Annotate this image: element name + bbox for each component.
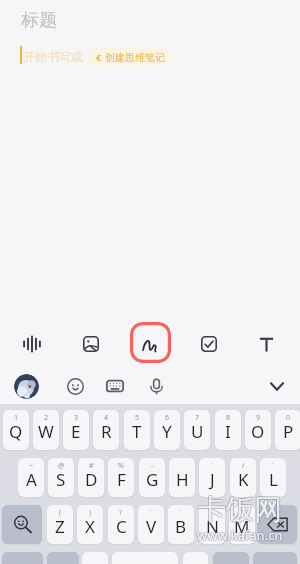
staticText: 创建思维笔记 <box>105 51 165 64</box>
button[interactable]: 8 <box>215 410 241 450</box>
staticText: # <box>89 461 94 471</box>
staticText: H <box>176 468 189 491</box>
button[interactable]: Collapse keyboard <box>265 374 289 398</box>
staticText: 8 <box>226 413 231 423</box>
staticText: www.kafan.cn <box>196 526 282 544</box>
button[interactable]: - <box>139 458 165 497</box>
staticText: K <box>238 468 249 491</box>
button[interactable]: Numbers and symbols <box>2 552 43 564</box>
button[interactable]: ˙ <box>169 458 195 497</box>
button[interactable]: ~ <box>18 458 44 497</box>
button[interactable]: ˙ <box>168 505 194 544</box>
staticText: www.kafan.cn <box>198 525 284 543</box>
button[interactable]: Enter <box>253 552 297 564</box>
button[interactable]: 0 <box>275 410 300 450</box>
button[interactable]: 3 <box>63 410 89 450</box>
staticText: www.kafan.cn <box>196 527 282 545</box>
staticText: 卡饭网 <box>197 493 281 528</box>
staticText: 1 <box>14 413 19 423</box>
button[interactable]: Space <box>112 552 178 564</box>
staticText: www.kafan.cn <box>197 527 283 545</box>
staticText: B <box>175 515 187 538</box>
staticText: 卡饭网 <box>199 493 283 528</box>
button[interactable]: # <box>78 458 104 497</box>
button[interactable]: Profile <box>14 374 39 399</box>
button[interactable]: Checklist <box>193 328 225 360</box>
staticText: www.kafan.cn <box>198 527 284 545</box>
staticText: U <box>191 420 204 443</box>
button[interactable]: € <box>88 48 171 66</box>
button[interactable]: ˙ <box>229 505 255 544</box>
button[interactable]: ? <box>108 505 134 544</box>
staticText: L <box>269 468 278 491</box>
button[interactable]: 9 <box>245 410 271 450</box>
button[interactable]: ˙ <box>199 458 225 497</box>
staticText: ˙ <box>211 508 213 518</box>
button[interactable]: / <box>230 458 256 497</box>
button[interactable]: Voice input <box>144 374 168 398</box>
staticText: www.kafan.cn <box>196 525 282 543</box>
staticText: F <box>117 468 126 491</box>
staticText: C <box>116 515 127 538</box>
staticText: O <box>251 420 265 443</box>
staticText: 7 <box>195 413 200 423</box>
button[interactable]: Audio recording <box>16 328 48 360</box>
button[interactable]: Handwriting <box>130 322 171 363</box>
staticText: @ <box>58 461 65 471</box>
staticText: 卡饭网 <box>199 492 283 527</box>
button[interactable]: @ <box>48 458 74 497</box>
staticText: I <box>225 420 231 443</box>
staticText: www.kafan.cn <box>198 526 284 544</box>
button[interactable]: Emoji <box>63 374 87 398</box>
button[interactable]: Switch language <box>47 552 79 564</box>
button[interactable]: Comma <box>82 552 108 564</box>
staticText: D <box>85 468 98 491</box>
button[interactable]: Keyboard <box>103 374 127 398</box>
staticText: ˙ <box>150 508 152 518</box>
staticText: 标题 <box>21 9 57 32</box>
staticText: 开始书写或 <box>23 49 83 64</box>
button[interactable]: 4 <box>93 410 119 450</box>
button[interactable]: % <box>108 458 134 497</box>
staticText: M <box>234 515 250 538</box>
button[interactable]: 1 <box>3 410 29 450</box>
staticText: 卡饭网 <box>199 491 283 526</box>
button[interactable]: Text style <box>250 328 282 360</box>
staticText: A <box>26 468 37 491</box>
button[interactable]: ˙ <box>138 505 164 544</box>
button[interactable]: 2 <box>33 410 59 450</box>
button[interactable]: 7 <box>184 410 210 450</box>
button[interactable]: Period <box>183 552 208 564</box>
staticText: W <box>38 420 54 443</box>
button[interactable]: 6 <box>154 410 180 450</box>
staticText: ˙ <box>180 508 182 518</box>
staticText: ˙ <box>211 461 213 471</box>
button[interactable]: ˙ <box>260 458 286 497</box>
staticText: ˙ <box>241 508 243 518</box>
button[interactable]: ˙ <box>199 505 225 544</box>
staticText: G <box>146 468 159 491</box>
staticText: Y <box>162 420 172 443</box>
button[interactable]: Backspace <box>257 505 297 544</box>
staticText: 6 <box>165 413 170 423</box>
staticText: ( <box>59 508 62 518</box>
staticText: E <box>71 420 81 443</box>
staticText: ~ <box>29 461 34 471</box>
button[interactable]: ) <box>77 505 103 544</box>
staticText: 2 <box>44 413 49 423</box>
staticText: 3 <box>74 413 79 423</box>
staticText: 卡饭网 <box>198 491 282 526</box>
staticText: - <box>151 461 154 471</box>
staticText: ? <box>119 508 123 518</box>
button[interactable]: Insert image <box>75 328 107 360</box>
button[interactable]: Emoji and search <box>2 505 42 544</box>
staticText: ˙ <box>181 461 183 471</box>
staticText: T <box>132 420 142 443</box>
staticText: P <box>283 420 294 443</box>
staticText: V <box>146 515 157 538</box>
button[interactable]: ( <box>47 505 73 544</box>
staticText: www.kafan.cn <box>197 526 283 544</box>
button[interactable]: More options <box>213 552 249 564</box>
staticText: X <box>85 515 95 538</box>
button[interactable]: 5 <box>124 410 150 450</box>
